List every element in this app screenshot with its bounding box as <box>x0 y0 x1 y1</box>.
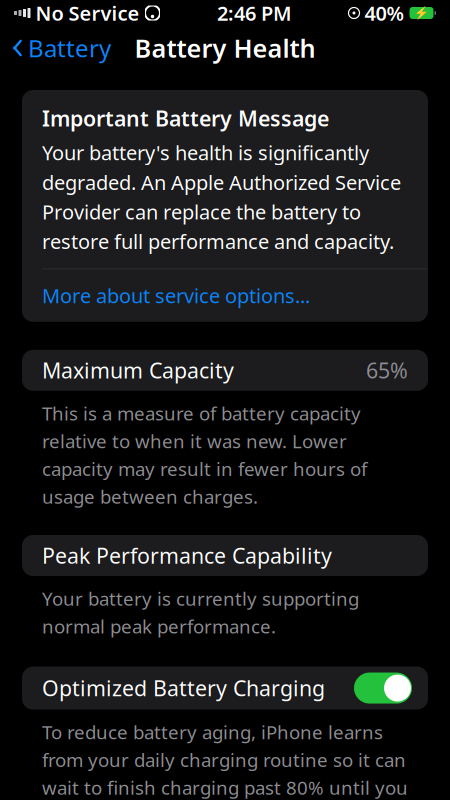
button[interactable]: Battery <box>0 26 123 70</box>
staticText: Your battery is currently supporting nor… <box>42 586 359 639</box>
staticText: ⚡ <box>414 6 429 20</box>
staticText: Optimized Battery Charging <box>42 674 325 702</box>
staticText: To reduce battery aging, iPhone learns f… <box>42 720 408 800</box>
button[interactable]: More about service options... <box>22 269 428 322</box>
button[interactable]: Maximum Capacity <box>22 350 428 391</box>
staticText: 65% <box>366 356 408 384</box>
staticText: Maximum Capacity <box>42 356 234 384</box>
staticText: This is a measure of battery capacity re… <box>42 401 367 509</box>
button[interactable]: Optimized Battery Charging <box>22 667 428 710</box>
staticText: Your battery's health is significantly d… <box>42 139 401 254</box>
staticText: 2:46 PM <box>217 0 292 26</box>
staticText: Peak Performance Capability <box>42 541 332 570</box>
staticText: 40% <box>364 0 404 26</box>
staticText: Battery Health <box>134 31 315 65</box>
staticText: No Service <box>35 0 139 26</box>
staticText: Important Battery Message <box>42 104 329 132</box>
button[interactable]: Peak Performance Capability <box>22 535 428 576</box>
staticText: Battery <box>28 32 111 64</box>
staticText: More about service options... <box>42 282 310 309</box>
